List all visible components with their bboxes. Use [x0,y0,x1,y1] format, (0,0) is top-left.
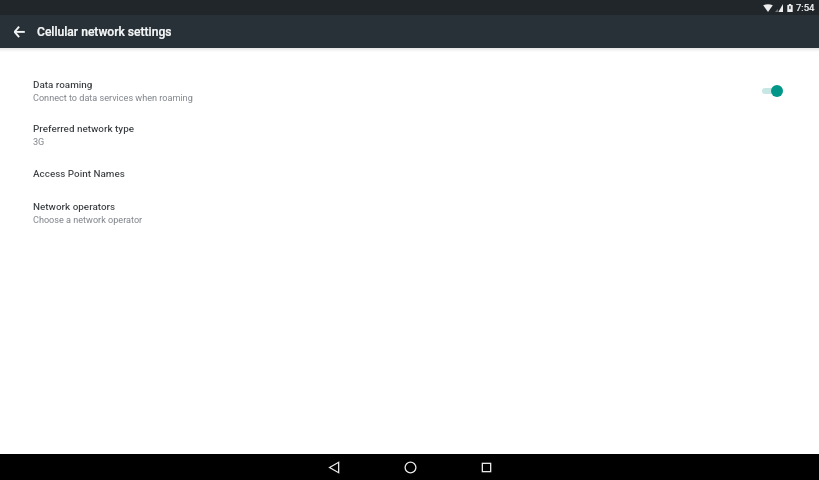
staticText: 7:54 [796,2,815,13]
staticText: Access Point Names [33,168,125,180]
staticText: Preferred network type [33,123,135,135]
button[interactable]: Data roaming toggle [756,79,786,103]
button[interactable]: Recents [448,454,524,480]
staticText: Connect to data services when roaming [33,93,193,104]
staticText: Choose a network operator [33,215,143,226]
button[interactable]: Home [372,454,448,480]
staticText: Cellular network settings [37,25,172,39]
button[interactable]: Back [0,15,37,48]
staticText: 3G [33,137,45,148]
button[interactable]: Network operators [0,201,819,245]
staticText: Data roaming [33,79,93,91]
staticText: Network operators [33,201,116,213]
button[interactable]: Preferred network type [0,123,819,168]
button[interactable]: Back [296,454,372,480]
button[interactable]: Data roaming [0,79,819,123]
button[interactable]: Access Point Names [0,168,819,201]
